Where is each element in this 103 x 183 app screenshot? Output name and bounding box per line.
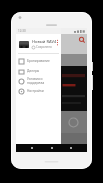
- staticText: Бронирование: [27, 59, 50, 63]
- button[interactable]: Дилеры: [16, 66, 61, 76]
- staticText: 12:30: [18, 29, 26, 33]
- button[interactable]: Обзор: [67, 144, 75, 152]
- button[interactable]: Бронирование: [16, 56, 61, 66]
- button[interactable]: Назад: [28, 144, 36, 152]
- button[interactable]: Новый RAV4: [16, 37, 61, 51]
- staticText: Сохранено: [36, 45, 52, 49]
- button[interactable]: Ещё: [55, 37, 60, 48]
- button[interactable]: Домой: [48, 144, 56, 152]
- staticText: Настройки: [27, 89, 44, 93]
- staticText: Условия и поддержка: [27, 77, 59, 85]
- button[interactable]: Настройки: [16, 86, 61, 96]
- staticText: Новый RAV4: [32, 39, 57, 44]
- button[interactable]: Поиск: [78, 36, 86, 44]
- staticText: Дилеры: [27, 69, 40, 73]
- button[interactable]: Условия и поддержка: [16, 76, 61, 86]
